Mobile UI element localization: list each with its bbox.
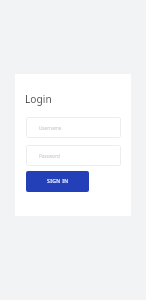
staticText: Username <box>39 125 62 131</box>
button[interactable]: SIGN IN <box>26 171 89 192</box>
staticText: SIGN IN <box>47 178 69 185</box>
button[interactable]: Password <box>26 145 121 166</box>
staticText: Login <box>25 92 52 106</box>
staticText: Password <box>39 153 60 159</box>
button[interactable]: Username <box>26 117 121 138</box>
